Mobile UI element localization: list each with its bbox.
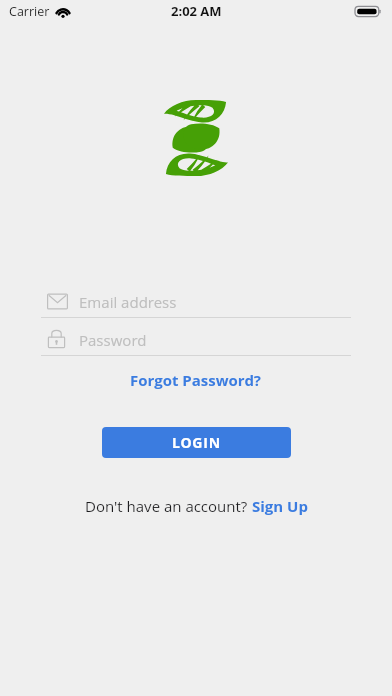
button[interactable]: Email [41, 286, 351, 317]
staticText: Forgot Password? [130, 370, 262, 390]
staticText: Email address [79, 292, 177, 312]
staticText: 2:02 AM [171, 2, 222, 20]
staticText: Password [79, 330, 147, 350]
staticText: Don't have an account? [85, 496, 252, 516]
staticText: LOGIN [172, 433, 221, 452]
staticText: Carrier [9, 3, 50, 20]
button[interactable]: Sign Up [252, 496, 308, 516]
button[interactable]: Password [41, 324, 351, 355]
button[interactable]: Forgot Password? [124, 367, 268, 393]
staticText: Sign Up [252, 496, 308, 516]
other: Email [47, 291, 68, 312]
other: Password [47, 329, 68, 350]
button[interactable]: LOGIN [102, 427, 291, 458]
